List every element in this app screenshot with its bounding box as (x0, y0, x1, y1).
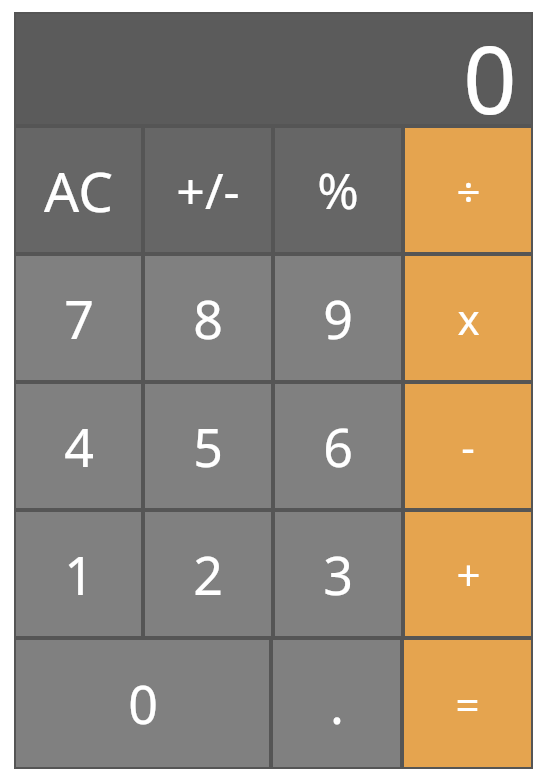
staticText: AC (44, 153, 113, 228)
button[interactable]: Equals (404, 640, 531, 767)
staticText: 9 (323, 283, 353, 354)
button[interactable]: 6 (275, 384, 401, 508)
staticText: +/- (176, 156, 240, 224)
staticText: 0 (128, 668, 158, 739)
button[interactable]: AC (16, 128, 141, 252)
staticText: . (330, 668, 344, 739)
button[interactable]: Subtract (405, 384, 531, 508)
button[interactable]: 2 (145, 512, 271, 636)
button[interactable]: +/- (145, 128, 271, 252)
staticText: 8 (193, 283, 223, 354)
button[interactable]: 4 (16, 384, 141, 508)
staticText: 3 (323, 539, 353, 610)
staticText: - (461, 418, 475, 475)
staticText: 5 (193, 411, 223, 482)
staticText: % (317, 156, 359, 224)
button[interactable]: 8 (145, 256, 271, 380)
button[interactable]: . (273, 640, 400, 767)
staticText: ÷ (456, 162, 481, 219)
staticText: 1 (64, 539, 94, 610)
button[interactable]: 7 (16, 256, 141, 380)
button[interactable]: 1 (16, 512, 141, 636)
button[interactable]: 5 (145, 384, 271, 508)
staticText: x (457, 290, 480, 347)
button[interactable]: % (275, 128, 401, 252)
button[interactable]: 9 (275, 256, 401, 380)
staticText: + (456, 546, 481, 603)
button[interactable]: Add (405, 512, 531, 636)
staticText: 7 (64, 283, 94, 354)
staticText: 4 (64, 411, 94, 482)
button[interactable]: Multiply (405, 256, 531, 380)
staticText: 6 (323, 411, 353, 482)
staticText: 2 (193, 539, 223, 610)
staticText: 0 (463, 14, 517, 124)
button[interactable]: 3 (275, 512, 401, 636)
staticText: = (455, 675, 480, 732)
button[interactable]: Divide (405, 128, 531, 252)
button[interactable]: 0 (16, 640, 269, 767)
